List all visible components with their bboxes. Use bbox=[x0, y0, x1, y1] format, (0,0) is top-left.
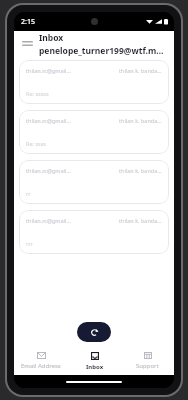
button[interactable]: thilan.rc@gmail… bbox=[19, 110, 169, 154]
staticText: Support bbox=[136, 362, 159, 370]
staticText: thilan k. banda… bbox=[119, 117, 162, 124]
staticText: Inbox bbox=[86, 363, 104, 371]
staticText: thilan k. banda… bbox=[119, 217, 162, 224]
staticText: thilan.rc@gmail… bbox=[26, 117, 71, 124]
button[interactable]: Refresh bbox=[77, 322, 111, 342]
button[interactable]: Support bbox=[121, 347, 174, 375]
staticText: thilan.rc@gmail… bbox=[26, 167, 71, 174]
staticText: Inbox bbox=[39, 32, 64, 44]
staticText: Re: sssss bbox=[26, 90, 49, 97]
button[interactable]: Email Address bbox=[14, 347, 68, 375]
staticText: 2:15 bbox=[21, 17, 35, 27]
staticText: Re: ssss bbox=[26, 140, 46, 147]
button[interactable]: thilan.rc@gmail… bbox=[19, 210, 169, 254]
staticText: rr bbox=[26, 190, 31, 197]
staticText: thilan.rc@gmail… bbox=[26, 217, 71, 224]
staticText: Email Address bbox=[21, 362, 61, 370]
staticText: penelope_turner199@wtf.moto… bbox=[39, 45, 168, 57]
button[interactable]: Open navigation menu bbox=[19, 36, 35, 52]
staticText: thilan k. banda… bbox=[119, 67, 162, 74]
staticText: thilan.rc@gmail… bbox=[26, 67, 71, 74]
button[interactable]: Inbox bbox=[68, 347, 121, 375]
button[interactable]: thilan.rc@gmail… bbox=[19, 60, 169, 104]
staticText: rrr bbox=[26, 240, 33, 247]
button[interactable]: thilan.rc@gmail… bbox=[19, 160, 169, 204]
staticText: thilan k. banda… bbox=[119, 167, 162, 174]
